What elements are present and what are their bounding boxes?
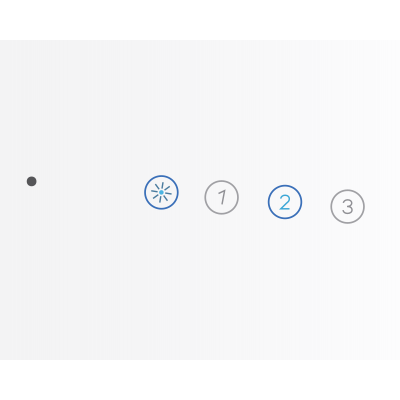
button[interactable]: Size 3 <box>331 190 364 223</box>
button[interactable]: Brightness <box>145 176 178 209</box>
button[interactable]: Size 1 <box>205 181 238 214</box>
button[interactable]: Size 2 <box>269 186 301 218</box>
